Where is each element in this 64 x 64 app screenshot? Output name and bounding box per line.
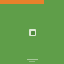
button[interactable]: Open tile [29, 29, 36, 36]
